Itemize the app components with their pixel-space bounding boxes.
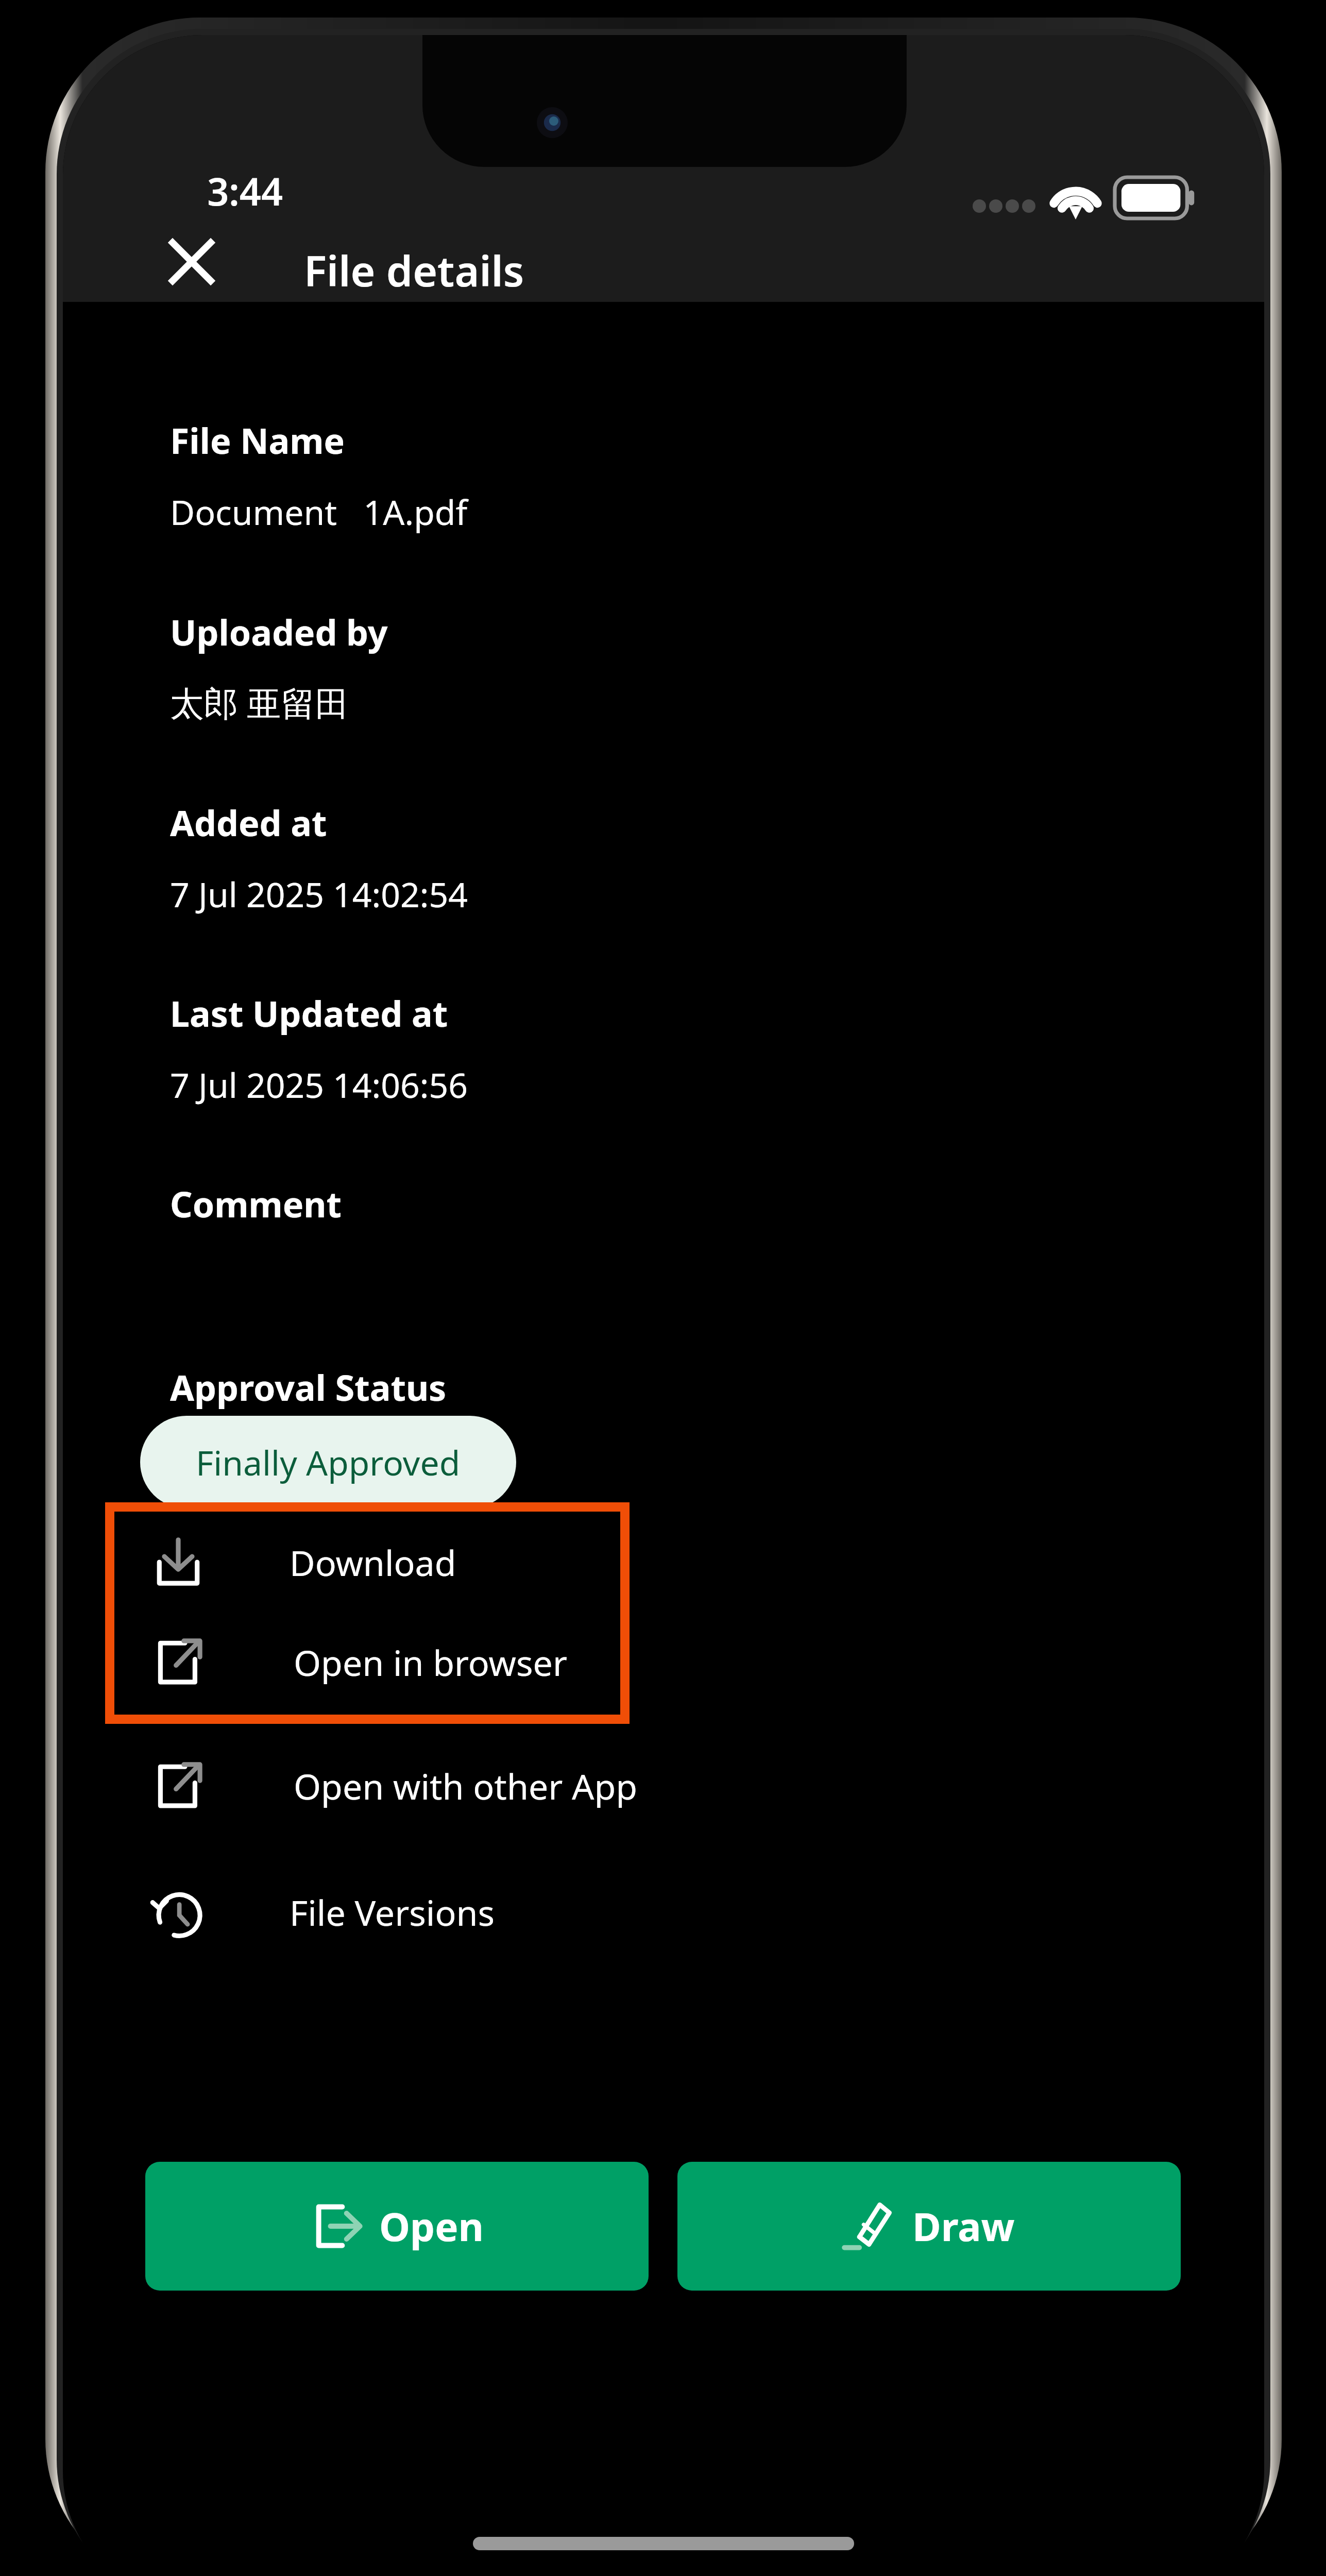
staticText: 7 Jul 2025 14:06:56 [170,1061,468,1108]
staticText: Open [379,2199,484,2253]
button[interactable]: File Versions [114,1861,681,1962]
button[interactable]: Open with other App [114,1735,681,1836]
button[interactable]: Open [145,2162,649,2291]
button[interactable]: Open in browser [114,1612,681,1713]
button[interactable]: Close [156,226,228,298]
staticText: 7 Jul 2025 14:02:54 [170,871,468,917]
button[interactable]: Download [114,1512,681,1613]
staticText: Finally Approved [196,1439,461,1485]
staticText: 3:44 [207,165,283,217]
staticText: File Name [170,416,345,464]
staticText: Download [290,1538,456,1586]
staticText: Open with other App [294,1762,638,1810]
staticText: Added at [170,799,327,846]
button[interactable]: Finally Approved [140,1416,516,1509]
button[interactable]: Draw [677,2162,1181,2291]
staticText: Uploaded by [170,608,388,656]
staticText: Last Updated at [170,989,448,1037]
staticText: Draw [912,2199,1015,2253]
staticText: Document 1A.pdf [170,488,468,535]
staticText: Approval Status [170,1363,447,1411]
staticText: File details [304,241,524,299]
staticText: File Versions [290,1888,495,1936]
staticText: Comment [170,1180,342,1228]
staticText: 太郎 亜留田 [170,679,349,725]
staticText: Open in browser [294,1638,568,1686]
